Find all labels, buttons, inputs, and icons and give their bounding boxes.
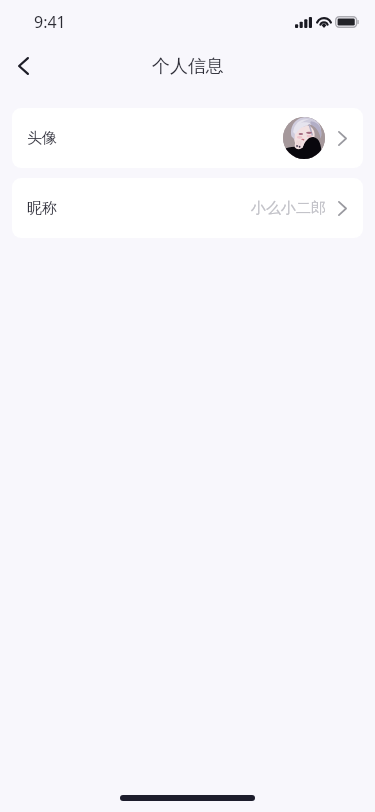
staticText: 昵称 (27, 199, 57, 218)
staticText: 小么小二郎 (251, 199, 326, 218)
staticText: 个人信息 (152, 55, 224, 78)
button[interactable]: Back (0, 44, 46, 88)
staticText: 9:41 (34, 11, 66, 33)
staticText: 头像 (27, 129, 57, 148)
button[interactable]: 头像 (12, 108, 363, 168)
button[interactable]: 昵称 (12, 178, 363, 238)
